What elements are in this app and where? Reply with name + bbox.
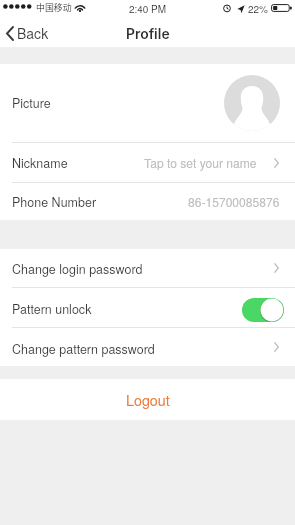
staticText: Change pattern password <box>12 340 155 358</box>
button[interactable]: Logout <box>0 379 295 420</box>
staticText: Phone Number <box>12 193 97 211</box>
staticText: 中国移动 <box>36 1 72 14</box>
button[interactable]: Phone Number <box>0 183 295 220</box>
button[interactable]: Profile picture <box>224 75 280 131</box>
staticText: Picture <box>12 94 51 112</box>
button[interactable]: Change login password <box>0 249 295 287</box>
staticText: Tap to set your name <box>144 154 257 171</box>
button[interactable]: Back <box>0 19 57 47</box>
staticText: Pattern unlock <box>12 300 92 318</box>
button[interactable]: Nickname <box>0 143 295 182</box>
staticText: Logout <box>126 390 170 410</box>
staticText: 86-15700085876 <box>188 193 280 210</box>
staticText: 2:40 PM <box>0 2 295 16</box>
staticText: Profile <box>126 26 170 43</box>
staticText: 22% <box>248 2 269 16</box>
staticText: Nickname <box>12 154 68 172</box>
button[interactable]: Pattern unlock <box>0 288 295 327</box>
staticText: Back <box>17 23 49 43</box>
staticText: Change login password <box>12 260 143 278</box>
button[interactable]: Pattern unlock toggle <box>242 298 284 322</box>
button[interactable]: Picture <box>0 64 295 142</box>
button[interactable]: Change pattern password <box>0 328 295 366</box>
